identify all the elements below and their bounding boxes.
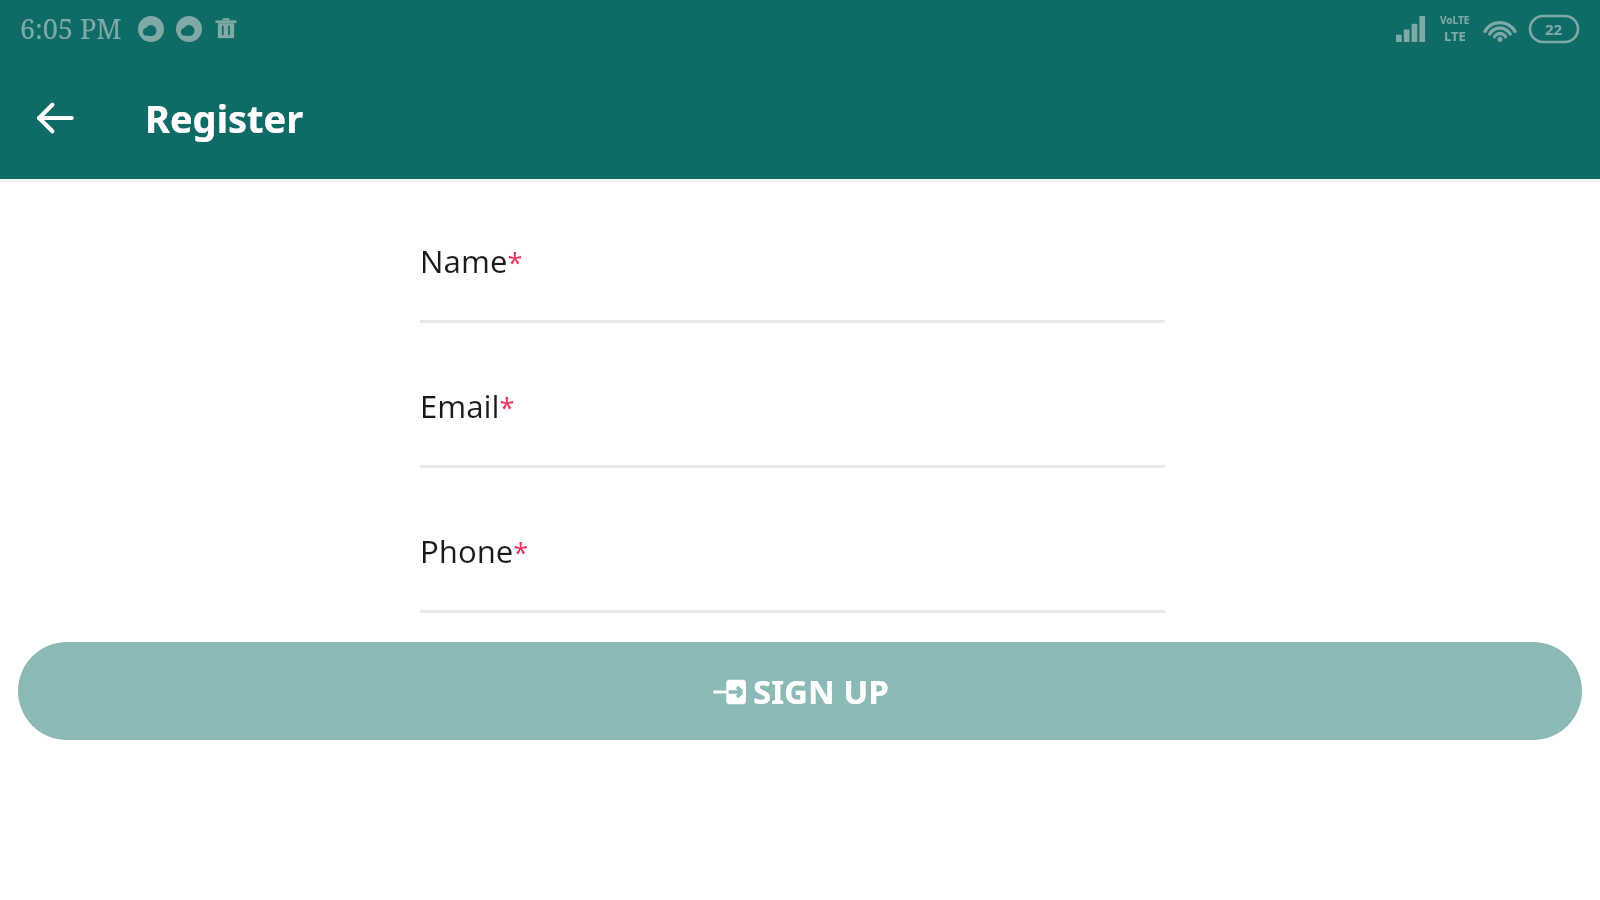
- button[interactable]: SIGN UP: [18, 642, 1582, 740]
- staticText: VoLTE: [1440, 13, 1470, 27]
- button[interactable]: Email*: [420, 385, 1165, 468]
- button[interactable]: Name*: [420, 240, 1165, 323]
- staticText: Phone*: [420, 530, 529, 572]
- staticText: Name*: [420, 240, 523, 282]
- staticText: Email*: [420, 385, 515, 427]
- staticText: SIGN UP: [753, 669, 889, 714]
- staticText: Register: [145, 92, 304, 144]
- staticText: 6:05 PM: [20, 10, 122, 47]
- staticText: 22: [1545, 19, 1563, 39]
- button[interactable]: Back: [22, 85, 88, 151]
- button[interactable]: Phone*: [420, 530, 1165, 613]
- staticText: LTE: [1444, 27, 1466, 45]
